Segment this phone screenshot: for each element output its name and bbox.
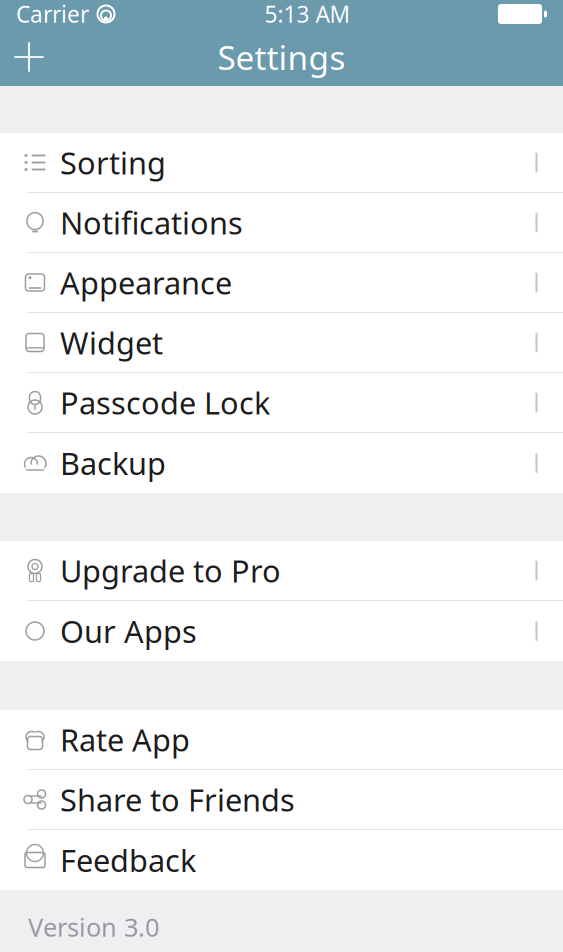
staticText: 5:13 AM xyxy=(264,0,350,29)
button[interactable]: Upgrade to Pro xyxy=(0,541,563,601)
button[interactable]: Backup xyxy=(0,433,563,493)
button[interactable]: Sorting xyxy=(0,133,563,193)
button[interactable]: Rate App xyxy=(0,710,563,770)
staticText: Rate App xyxy=(60,719,190,760)
staticText: Settings xyxy=(217,35,345,79)
button[interactable]: Appearance xyxy=(0,253,563,313)
button[interactable]: Passcode Lock xyxy=(0,373,563,433)
staticText: Carrier xyxy=(16,0,89,29)
staticText: Widget xyxy=(60,322,163,363)
button[interactable]: Our Apps xyxy=(0,601,563,661)
button[interactable]: Feedback xyxy=(0,830,563,890)
staticText: Backup xyxy=(60,443,166,483)
staticText: Appearance xyxy=(60,262,232,303)
button[interactable]: Close xyxy=(0,29,58,85)
staticText: Passcode Lock xyxy=(60,382,270,423)
button[interactable]: Notifications xyxy=(0,193,563,253)
staticText: Feedback xyxy=(60,840,196,880)
button[interactable]: Share to Friends xyxy=(0,770,563,830)
staticText: Share to Friends xyxy=(60,779,295,820)
staticText: Upgrade to Pro xyxy=(60,550,281,591)
staticText: Sorting xyxy=(60,142,166,183)
staticText: Our Apps xyxy=(60,611,197,651)
staticText: Version 3.0 xyxy=(28,910,159,944)
button[interactable]: Widget xyxy=(0,313,563,373)
staticText: Notifications xyxy=(60,202,243,243)
